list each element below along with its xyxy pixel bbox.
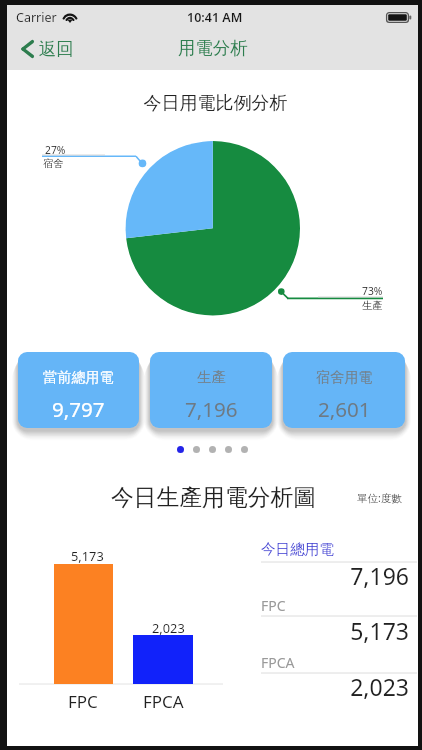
staticText: 5,173 [261,615,409,646]
staticText: FPCA [143,690,184,713]
button[interactable]: 當前總用電 [18,352,139,428]
staticText: 單位:度數 [357,491,402,505]
staticText: 今日總用電 [261,540,334,558]
staticText: 當前總用電 [43,368,114,386]
staticText: 今日用電比例分析 [10,92,421,115]
button[interactable]: Page 2 [193,446,200,453]
staticText: 今日生產用電分析圖 [8,483,419,512]
staticText: 用電分析 [178,37,248,59]
button[interactable]: 宿舍用電 [283,352,405,428]
staticText: FPCA [261,653,295,672]
staticText: 宿舍 [43,157,64,170]
staticText: 生產 [362,299,383,312]
staticText: 2,023 [261,671,409,702]
staticText: 5,173 [71,547,104,564]
staticText: 7,196 [261,560,409,591]
staticText: 7,196 [185,395,238,423]
staticText: 返回 [39,38,74,60]
staticText: 生產 [197,368,226,386]
button[interactable]: Page 5 [241,446,248,453]
staticText: 73% [362,284,383,298]
staticText: FPC [261,596,286,615]
staticText: 9,797 [52,395,105,423]
button[interactable]: Back [7,33,88,65]
staticText: FPC [68,690,98,713]
staticText: 宿舍用電 [316,368,373,386]
button[interactable]: Page 4 [225,446,232,453]
button[interactable]: Page 1 [177,446,184,453]
staticText: 2,601 [318,395,371,423]
staticText: Carrier [16,9,57,26]
staticText: 10:41 AM [187,9,243,26]
staticText: 2,023 [152,619,185,636]
button[interactable]: 生產 [150,352,272,428]
button[interactable]: Page 3 [209,446,216,453]
staticText: 27% [45,143,66,157]
